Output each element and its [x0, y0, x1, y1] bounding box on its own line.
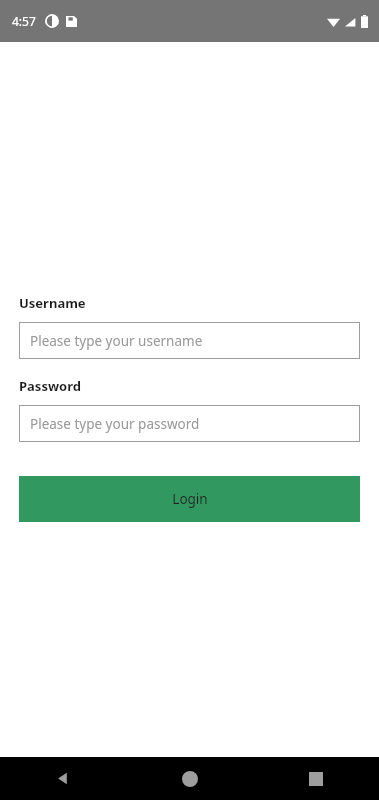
button[interactable]: Please type your username [19, 322, 360, 359]
button[interactable]: Please type your password [19, 405, 360, 442]
staticText: Username [19, 294, 86, 312]
button[interactable]: Home [127, 757, 253, 800]
button[interactable]: Back [0, 757, 127, 800]
staticText: Password [19, 377, 81, 395]
button[interactable]: Login [19, 476, 360, 522]
button[interactable]: Recent apps [253, 757, 379, 800]
staticText: Please type your password [30, 415, 200, 433]
staticText: 4:57 [12, 13, 36, 29]
staticText: Please type your username [30, 332, 203, 350]
staticText: Login [172, 490, 208, 508]
